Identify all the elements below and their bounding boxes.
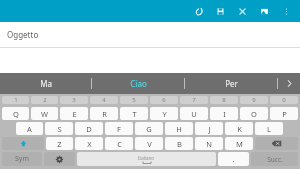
staticText: A <box>27 124 32 134</box>
button[interactable]: X <box>75 137 103 150</box>
button[interactable]: Shift <box>2 137 44 150</box>
staticText: M <box>236 139 243 149</box>
button[interactable]: Insert image <box>253 0 275 22</box>
button[interactable]: 8 <box>210 96 238 104</box>
button[interactable]: Y <box>150 107 178 120</box>
button[interactable]: I <box>210 107 238 120</box>
staticText: Per <box>225 78 238 89</box>
staticText: Oggetto <box>7 29 39 40</box>
staticText: F <box>117 124 121 134</box>
button[interactable]: D <box>75 122 103 135</box>
button[interactable]: T <box>120 107 148 120</box>
staticText: I <box>223 109 226 119</box>
button[interactable]: R <box>90 107 118 120</box>
button[interactable]: 0 <box>270 96 298 104</box>
button[interactable]: S <box>45 122 73 135</box>
staticText: Z <box>57 139 62 149</box>
button[interactable]: More options <box>275 0 297 22</box>
button[interactable]: M <box>225 137 253 150</box>
button[interactable]: Succ. <box>251 152 298 166</box>
staticText: O <box>251 109 257 119</box>
staticText: Sym <box>15 154 29 164</box>
staticText: Ciao <box>130 78 147 89</box>
staticText: H <box>176 124 182 134</box>
staticText: L <box>267 124 271 134</box>
staticText: 0 <box>282 96 286 104</box>
button[interactable]: E <box>60 107 88 120</box>
button[interactable]: C <box>105 137 133 150</box>
button[interactable]: L <box>255 122 283 135</box>
staticText: Q <box>13 109 19 119</box>
button[interactable]: 6 <box>150 96 178 104</box>
button[interactable]: B <box>165 137 193 150</box>
button[interactable]: F <box>105 122 133 135</box>
staticText: J <box>208 124 211 134</box>
button[interactable]: Backspace <box>255 137 298 150</box>
staticText: W <box>41 109 48 119</box>
button[interactable]: Z <box>46 137 73 150</box>
staticText: 6 <box>162 96 166 104</box>
button[interactable]: Per <box>185 73 277 94</box>
staticText: 5 <box>132 96 136 104</box>
staticText: 1 <box>14 96 18 104</box>
button[interactable]: W <box>31 107 58 120</box>
button[interactable]: . <box>218 152 249 166</box>
staticText: . <box>232 154 235 164</box>
staticText: 4 <box>102 96 106 104</box>
button[interactable]: Save <box>209 0 231 22</box>
staticText: D <box>86 124 92 134</box>
button[interactable]: 9 <box>240 96 268 104</box>
button[interactable]: P <box>270 107 298 120</box>
button[interactable]: 5 <box>120 96 148 104</box>
staticText: R <box>102 109 107 119</box>
button[interactable]: H <box>165 122 193 135</box>
button[interactable]: 2 <box>31 96 58 104</box>
button[interactable]: Q <box>2 107 29 120</box>
staticText: K <box>237 124 242 134</box>
staticText: N <box>206 139 212 149</box>
staticText: 9 <box>252 96 256 104</box>
button[interactable]: A <box>16 122 43 135</box>
button[interactable]: Space <box>77 152 216 166</box>
staticText: E <box>72 109 77 119</box>
staticText: V <box>147 139 152 149</box>
button[interactable]: Attach <box>187 0 209 22</box>
staticText: 7 <box>192 96 196 104</box>
button[interactable]: Ciao <box>92 73 184 94</box>
button[interactable]: N <box>195 137 223 150</box>
staticText: 2 <box>43 96 47 104</box>
button[interactable]: G <box>135 122 163 135</box>
staticText: Succ. <box>267 155 283 164</box>
button[interactable]: Oggetto <box>0 22 300 47</box>
staticText: X <box>87 139 92 149</box>
staticText: P <box>282 109 287 119</box>
staticText: Y <box>162 109 167 119</box>
button[interactable]: Ma <box>0 73 91 94</box>
staticText: 3 <box>72 96 76 104</box>
button[interactable]: J <box>195 122 223 135</box>
button[interactable]: Close <box>231 0 253 22</box>
button[interactable]: K <box>225 122 253 135</box>
button[interactable]: Sym <box>2 152 42 166</box>
staticText: S <box>57 124 62 134</box>
staticText: B <box>177 139 182 149</box>
staticText: U <box>191 109 197 119</box>
staticText: C <box>117 139 122 149</box>
button[interactable]: V <box>135 137 163 150</box>
staticText: Italiano <box>138 155 155 161</box>
button[interactable]: 7 <box>180 96 208 104</box>
button[interactable]: 4 <box>90 96 118 104</box>
staticText: G <box>146 124 152 134</box>
staticText: 8 <box>222 96 226 104</box>
staticText: Ma <box>40 78 52 89</box>
button[interactable]: O <box>240 107 268 120</box>
button[interactable]: 3 <box>60 96 88 104</box>
button[interactable]: Settings <box>44 152 75 166</box>
button[interactable]: U <box>180 107 208 120</box>
staticText: T <box>132 109 137 119</box>
button[interactable]: More suggestions <box>278 73 300 94</box>
button[interactable]: 1 <box>2 96 29 104</box>
